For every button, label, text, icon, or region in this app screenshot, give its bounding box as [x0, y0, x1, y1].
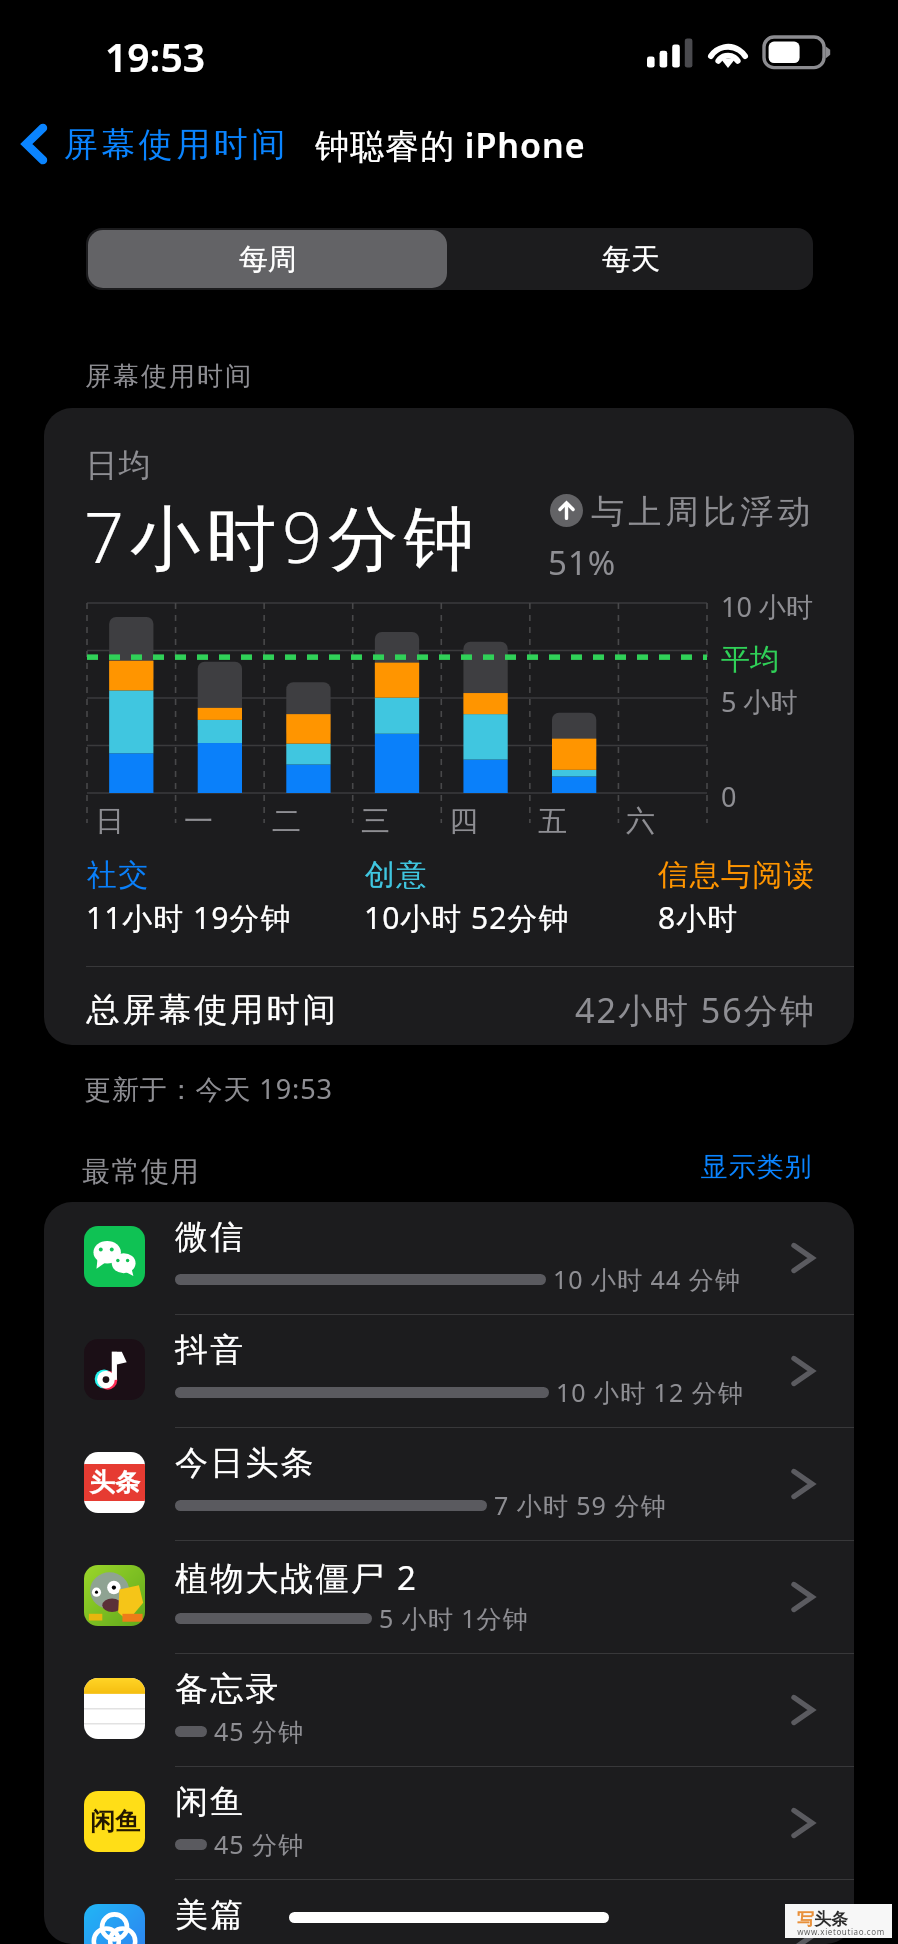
- staticText: 51%: [548, 540, 617, 585]
- staticText: 创意: [364, 856, 427, 894]
- staticText: 五: [538, 803, 566, 840]
- staticText: 六: [626, 803, 654, 840]
- staticText: 日: [95, 803, 123, 840]
- staticText: 屏幕使用时间: [62, 123, 287, 166]
- staticText: 平均: [721, 641, 779, 678]
- button[interactable]: 植物大战僵尸 2: [44, 1541, 854, 1654]
- button[interactable]: 备忘录: [44, 1654, 854, 1767]
- staticText: 与上周比浮动: [591, 491, 815, 533]
- staticText: 最常使用: [82, 1154, 201, 1189]
- staticText: 总屏幕使用时间: [85, 989, 337, 1031]
- staticText: 10 小时 12 分钟: [556, 1375, 744, 1409]
- staticText: 42小时 56分钟: [575, 987, 816, 1033]
- staticText: 日均: [85, 445, 151, 485]
- staticText: 一: [184, 803, 212, 840]
- staticText: 头条: [814, 1909, 848, 1930]
- button[interactable]: 抖音: [44, 1315, 854, 1428]
- staticText: 钟聪睿的 iPhone: [315, 122, 586, 168]
- staticText: 更新于：今天 19:53: [84, 1070, 333, 1107]
- staticText: 10小时 52分钟: [364, 897, 570, 938]
- staticText: 10 小时: [721, 588, 813, 625]
- staticText: 抖音: [175, 1329, 246, 1371]
- button[interactable]: 每天: [449, 228, 813, 290]
- button[interactable]: 每周: [88, 230, 447, 288]
- staticText: 写: [797, 1909, 814, 1930]
- button[interactable]: 微信: [44, 1202, 854, 1315]
- button[interactable]: 头条: [44, 1428, 854, 1541]
- staticText: 闲鱼: [90, 1806, 140, 1837]
- staticText: 11小时 19分钟: [86, 897, 292, 938]
- staticText: 社交: [86, 856, 149, 894]
- staticText: 微信: [175, 1216, 246, 1258]
- staticText: 信息与阅读: [658, 856, 816, 894]
- button[interactable]: 美篇: [44, 1880, 854, 1944]
- staticText: 美篇: [175, 1894, 246, 1936]
- staticText: 5 小时 1分钟: [379, 1601, 529, 1635]
- button[interactable]: 闲鱼: [44, 1767, 854, 1880]
- staticText: 二: [272, 803, 300, 840]
- staticText: 7 小时 59 分钟: [494, 1488, 667, 1522]
- staticText: 每周: [239, 241, 297, 278]
- staticText: 19:53: [105, 30, 205, 83]
- staticText: 三: [361, 803, 389, 840]
- staticText: 8小时: [658, 897, 739, 938]
- staticText: 10 小时 44 分钟: [553, 1262, 741, 1296]
- staticText: 闲鱼: [175, 1781, 246, 1823]
- staticText: 今日头条: [175, 1442, 316, 1484]
- staticText: 备忘录: [175, 1668, 281, 1710]
- staticText: 45 分钟: [214, 1827, 305, 1861]
- staticText: 7小时9分钟: [84, 488, 480, 584]
- staticText: 四: [449, 803, 477, 840]
- staticText: 植物大战僵尸 2: [175, 1555, 419, 1600]
- button[interactable]: 返回 屏幕使用时间: [18, 116, 287, 172]
- staticText: 0: [721, 778, 737, 815]
- staticText: 45 分钟: [214, 1714, 305, 1748]
- staticText: 显示类别: [700, 1150, 812, 1184]
- staticText: 头条: [90, 1467, 140, 1498]
- staticText: www.xietoutiao.com: [797, 1926, 885, 1937]
- staticText: 每天: [602, 241, 660, 278]
- button[interactable]: 显示类别: [694, 1144, 818, 1190]
- button[interactable]: 总屏幕使用时间: [85, 979, 816, 1041]
- staticText: 屏幕使用时间: [84, 360, 252, 393]
- staticText: 5 小时: [721, 683, 798, 720]
